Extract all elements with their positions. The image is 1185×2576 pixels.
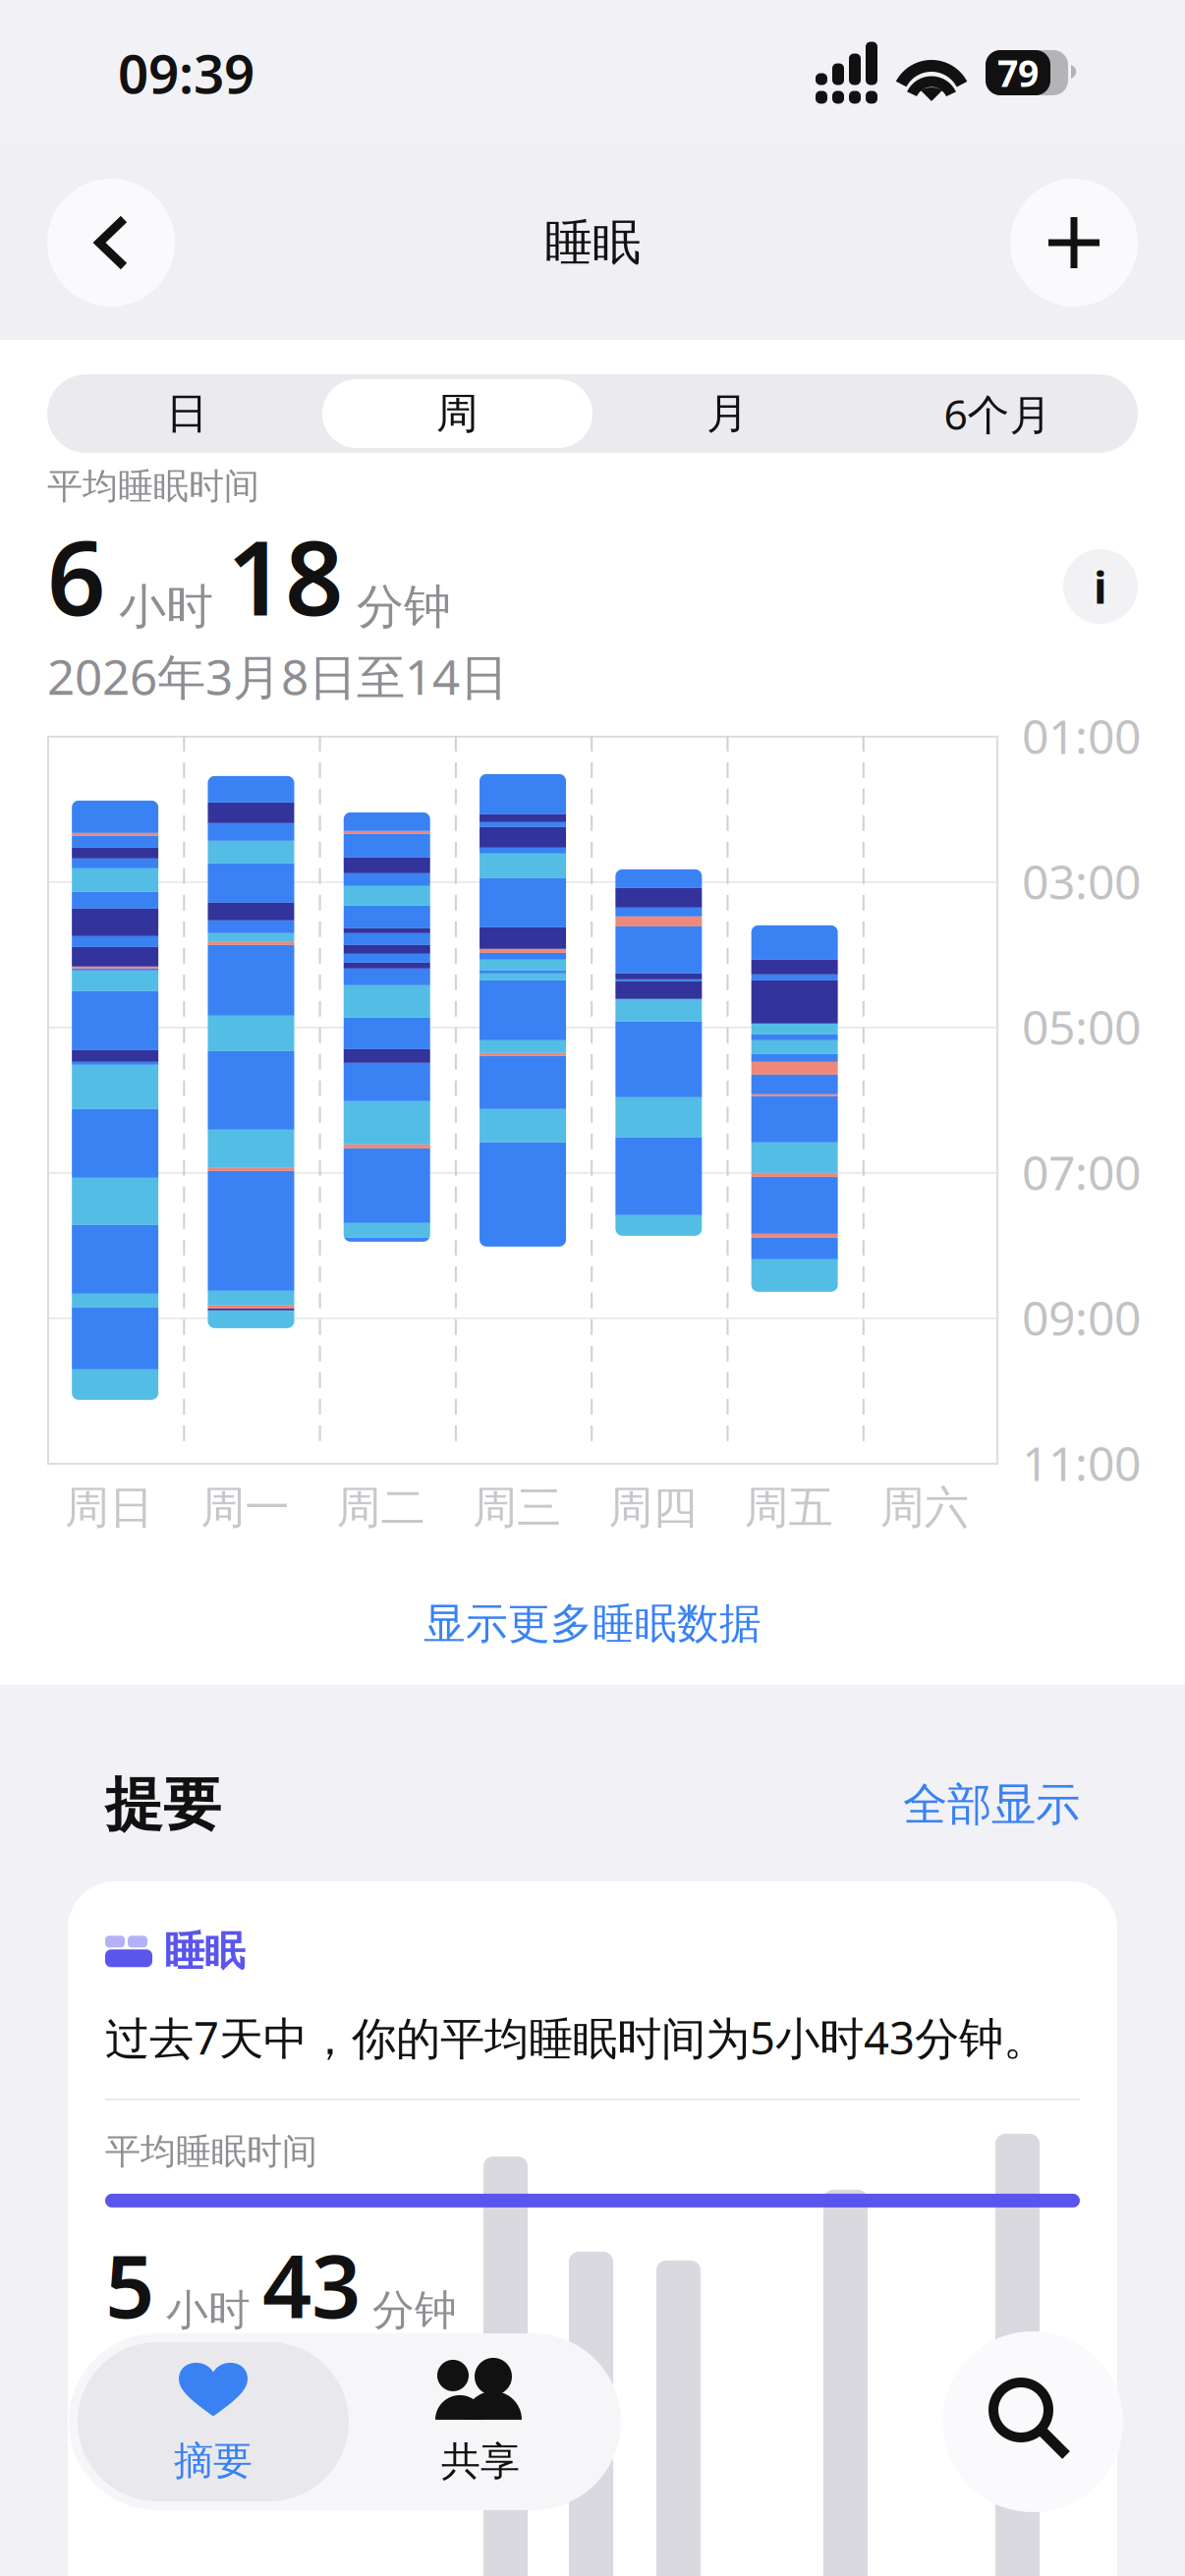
staticText: 05:00 xyxy=(1022,995,1141,1058)
staticText: 2026年3月8日至14日 xyxy=(47,644,508,708)
staticText: 周 xyxy=(436,388,479,439)
staticText: 5 xyxy=(105,2227,154,2342)
staticText: 分钟 xyxy=(357,578,451,636)
button[interactable]: 6个月 xyxy=(863,379,1133,448)
button[interactable]: Info xyxy=(1063,549,1138,624)
button[interactable]: 月 xyxy=(592,379,863,448)
staticText: 小时 xyxy=(166,2285,251,2336)
staticText: 18 xyxy=(227,508,343,644)
staticText: 共享 xyxy=(441,2437,520,2486)
staticText: 周三 xyxy=(473,1480,561,1535)
button[interactable]: 日 xyxy=(52,379,322,448)
staticText: 摘要 xyxy=(174,2437,253,2485)
staticText: 小时 xyxy=(119,578,213,636)
button[interactable]: 周 xyxy=(322,379,592,448)
staticText: 03:00 xyxy=(1022,850,1141,912)
staticText: 01:00 xyxy=(1022,704,1141,767)
staticText: i xyxy=(1094,557,1107,616)
staticText: 周日 xyxy=(65,1480,153,1535)
staticText: 周二 xyxy=(337,1480,425,1535)
staticText: 周一 xyxy=(201,1480,289,1535)
staticText: 月 xyxy=(706,388,749,439)
staticText: 睡眠 xyxy=(164,1926,245,1976)
staticText: 周五 xyxy=(744,1480,833,1535)
staticText: 平均睡眠时间 xyxy=(105,2130,317,2173)
button[interactable]: 共享 xyxy=(349,2342,612,2501)
staticText: 6个月 xyxy=(944,386,1052,442)
staticText: 09:00 xyxy=(1022,1286,1141,1349)
button[interactable]: 摘要 xyxy=(78,2342,349,2501)
staticText: 全部显示 xyxy=(903,1777,1080,1832)
staticText: 显示更多睡眠数据 xyxy=(423,1598,762,1650)
staticText: 睡眠 xyxy=(544,213,641,272)
staticText: 日 xyxy=(166,388,208,439)
staticText: 过去7天中，你的平均睡眠时间为5小时43分钟。 xyxy=(105,2008,1047,2067)
staticText: 提要 xyxy=(105,1769,221,1840)
button[interactable]: 全部显示 xyxy=(903,1777,1080,1832)
staticText: 79 xyxy=(997,48,1039,97)
staticText: 07:00 xyxy=(1022,1141,1141,1203)
staticText: 周四 xyxy=(608,1480,697,1535)
button[interactable]: Back xyxy=(47,179,175,307)
staticText: 周六 xyxy=(880,1480,969,1535)
staticText: 11:00 xyxy=(1022,1431,1141,1494)
staticText: 09:39 xyxy=(118,37,254,108)
staticText: 43 xyxy=(262,2227,361,2342)
staticText: 平均睡眠时间 xyxy=(47,465,259,508)
button[interactable]: 显示更多睡眠数据 xyxy=(0,1563,1185,1685)
staticText: 6 xyxy=(47,508,105,644)
staticText: 分钟 xyxy=(372,2285,457,2336)
button[interactable]: Search xyxy=(942,2331,1123,2512)
button[interactable]: Add xyxy=(1010,179,1138,307)
